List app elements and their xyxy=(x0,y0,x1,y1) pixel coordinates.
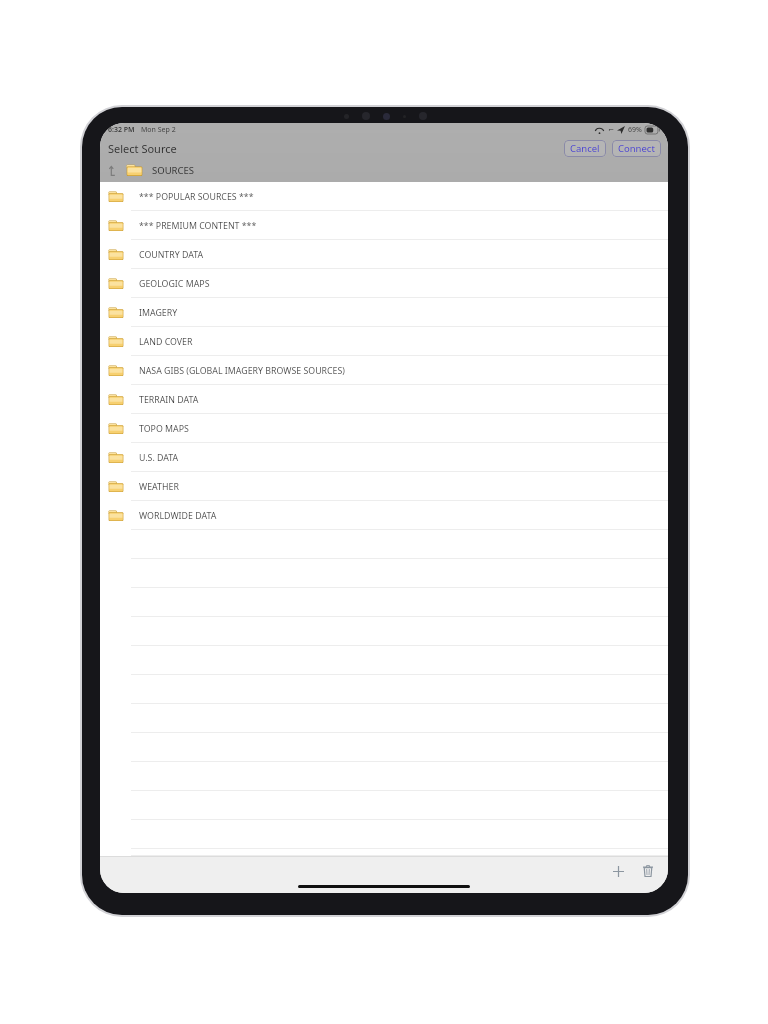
staticText: U.S. DATA xyxy=(139,452,179,464)
button[interactable]: GEOLOGIC MAPS xyxy=(100,269,668,298)
staticText: SOURCES xyxy=(152,164,194,177)
button[interactable]: Cancel xyxy=(564,140,606,157)
staticText: *** PREMIUM CONTENT *** xyxy=(139,220,257,232)
staticText: WEATHER xyxy=(139,481,179,493)
button[interactable]: Up one level xyxy=(100,159,668,182)
button[interactable]: WEATHER xyxy=(100,472,668,501)
button[interactable]: Add source xyxy=(610,863,626,879)
staticText: COUNTRY DATA xyxy=(139,249,204,261)
staticText: WORLDWIDE DATA xyxy=(139,510,217,522)
button[interactable]: NASA GIBS (GLOBAL IMAGERY BROWSE SOURCES… xyxy=(100,356,668,385)
button[interactable]: *** PREMIUM CONTENT *** xyxy=(100,211,668,240)
staticText: NASA GIBS (GLOBAL IMAGERY BROWSE SOURCES… xyxy=(139,365,345,377)
button[interactable]: *** POPULAR SOURCES *** xyxy=(100,182,668,211)
staticText: Cancel xyxy=(570,142,600,155)
other: Up one level xyxy=(108,165,119,176)
staticText: 69% xyxy=(628,125,642,135)
staticText: ⌐ xyxy=(608,126,614,134)
button[interactable]: Connect xyxy=(612,140,661,157)
button[interactable]: TERRAIN DATA xyxy=(100,385,668,414)
staticText: 6:32 PM xyxy=(108,125,135,135)
staticText: TERRAIN DATA xyxy=(139,394,199,406)
button[interactable]: WORLDWIDE DATA xyxy=(100,501,668,530)
button[interactable]: COUNTRY DATA xyxy=(100,240,668,269)
staticText: GEOLOGIC MAPS xyxy=(139,278,210,290)
staticText: TOPO MAPS xyxy=(139,423,189,435)
staticText: IMAGERY xyxy=(139,307,178,319)
button[interactable]: U.S. DATA xyxy=(100,443,668,472)
button[interactable]: LAND COVER xyxy=(100,327,668,356)
button[interactable]: TOPO MAPS xyxy=(100,414,668,443)
staticText: Select Source xyxy=(108,141,177,156)
button[interactable]: Delete source xyxy=(640,863,656,879)
staticText: Connect xyxy=(618,142,655,155)
staticText: *** POPULAR SOURCES *** xyxy=(139,191,254,203)
button[interactable]: IMAGERY xyxy=(100,298,668,327)
staticText: Mon Sep 2 xyxy=(141,125,176,135)
staticText: LAND COVER xyxy=(139,336,193,348)
